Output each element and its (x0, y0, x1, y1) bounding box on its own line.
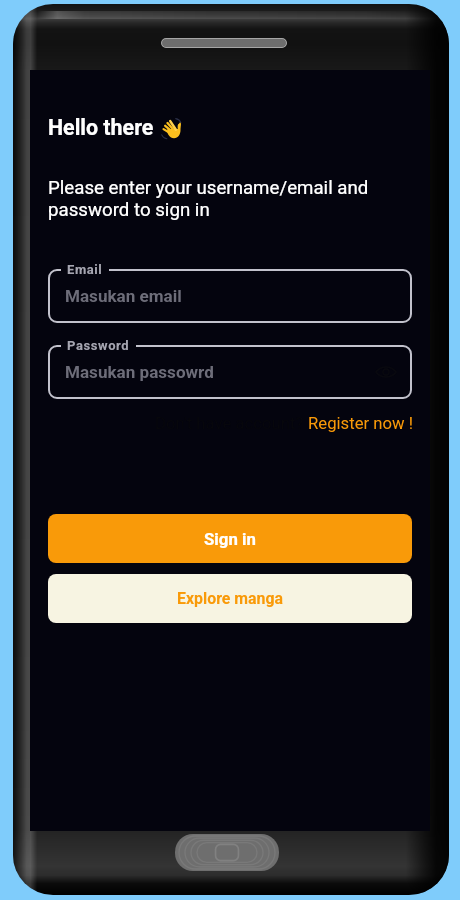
staticText: Password (67, 338, 130, 353)
staticText: Hello there (48, 115, 154, 140)
staticText: Masukan email (65, 286, 182, 306)
button[interactable]: Register now ! (308, 414, 413, 434)
staticText: Please enter your username/email and pas… (48, 177, 369, 221)
button[interactable]: Home (175, 834, 279, 871)
staticText: Email (67, 262, 103, 277)
button[interactable]: Masukan email (48, 269, 412, 323)
button[interactable]: Masukan passowrd (48, 345, 412, 399)
staticText: Register now ! (308, 414, 413, 434)
staticText: Masukan passowrd (65, 362, 214, 382)
staticText: Explore manga (177, 589, 284, 608)
button[interactable]: Explore manga (48, 574, 412, 623)
button[interactable]: Sign in (48, 514, 412, 563)
staticText: Sign in (204, 529, 256, 549)
